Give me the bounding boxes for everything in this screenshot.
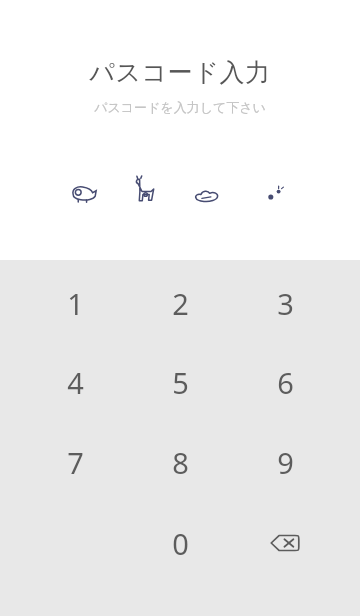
staticText: パスコードを入力して下さい	[94, 99, 266, 115]
staticText: 6	[277, 363, 294, 402]
button[interactable]: 2	[128, 264, 232, 342]
button[interactable]: Delete	[233, 504, 337, 582]
button[interactable]: 7	[23, 423, 127, 501]
staticText: 0	[172, 524, 189, 563]
staticText: 3	[277, 284, 294, 323]
staticText: 5	[172, 363, 189, 402]
button[interactable]: 1	[23, 264, 127, 342]
staticText: 2	[172, 284, 189, 323]
staticText: 8	[172, 443, 189, 482]
staticText: 1	[67, 284, 84, 323]
staticText: 7	[67, 443, 84, 482]
button[interactable]: 3	[233, 264, 337, 342]
staticText: パスコード入力	[89, 57, 271, 88]
staticText: 9	[277, 443, 294, 482]
button[interactable]: 6	[233, 343, 337, 421]
staticText: 4	[67, 363, 84, 402]
button[interactable]: 9	[233, 423, 337, 501]
button[interactable]: 8	[128, 423, 232, 501]
button[interactable]: 5	[128, 343, 232, 421]
button[interactable]: 4	[23, 343, 127, 421]
button[interactable]: 0	[128, 504, 232, 582]
